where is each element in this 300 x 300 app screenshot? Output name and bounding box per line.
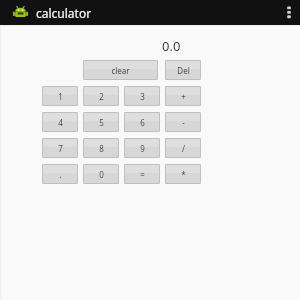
staticText: . (59, 169, 62, 180)
button[interactable]: / (165, 138, 201, 158)
staticText: 6 (140, 117, 145, 128)
button[interactable]: + (165, 86, 201, 106)
staticText: 8 (99, 143, 104, 154)
staticText: 0 (99, 169, 104, 180)
button[interactable]: 8 (83, 138, 119, 158)
staticText: + (181, 91, 186, 102)
button[interactable]: Del (165, 60, 201, 80)
button[interactable]: clear (83, 60, 158, 80)
button[interactable]: . (42, 164, 78, 184)
staticText: 1 (58, 91, 63, 102)
button[interactable]: 5 (83, 112, 119, 132)
button[interactable]: = (124, 164, 160, 184)
button[interactable]: 0 (83, 164, 119, 184)
staticText: calculator (36, 5, 92, 21)
staticText: 9 (140, 143, 145, 154)
button[interactable]: 2 (83, 86, 119, 106)
staticText: clear (111, 65, 130, 76)
button[interactable]: 3 (124, 86, 160, 106)
staticText: 3 (140, 91, 145, 102)
staticText: / (182, 143, 185, 154)
button[interactable]: 9 (124, 138, 160, 158)
button[interactable]: 1 (42, 86, 78, 106)
button[interactable]: * (165, 164, 201, 184)
button[interactable]: More options (278, 0, 300, 25)
staticText: 5 (99, 117, 104, 128)
staticText: - (182, 117, 185, 128)
staticText: 2 (99, 91, 104, 102)
staticText: * (181, 169, 186, 180)
staticText: Del (177, 65, 190, 76)
button[interactable]: - (165, 112, 201, 132)
staticText: 7 (58, 143, 63, 154)
button[interactable]: App icon (13, 5, 28, 20)
button[interactable]: 4 (42, 112, 78, 132)
button[interactable]: 7 (42, 138, 78, 158)
staticText: 0.0 (162, 37, 181, 55)
button[interactable]: 6 (124, 112, 160, 132)
staticText: = (140, 169, 145, 180)
staticText: 4 (58, 117, 63, 128)
